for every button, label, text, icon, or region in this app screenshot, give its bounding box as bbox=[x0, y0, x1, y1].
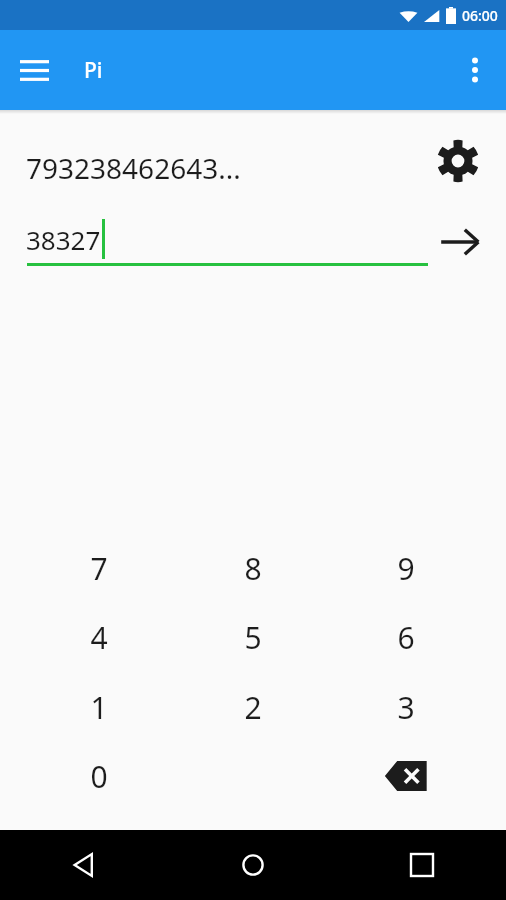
staticText: 1 bbox=[90, 687, 108, 728]
button[interactable]: Back bbox=[0, 830, 168, 900]
staticText: 06:00 bbox=[462, 6, 498, 25]
button[interactable]: 8 bbox=[187, 535, 319, 601]
staticText: 2 bbox=[244, 687, 262, 728]
button[interactable]: 3 bbox=[340, 674, 472, 740]
button[interactable]: 6 bbox=[340, 604, 472, 670]
button[interactable]: Recent apps bbox=[337, 830, 506, 900]
button[interactable]: 9 bbox=[340, 535, 472, 601]
button[interactable]: More options bbox=[451, 46, 499, 94]
button[interactable]: 4 bbox=[33, 604, 165, 670]
staticText: 9 bbox=[397, 548, 415, 589]
button[interactable]: 5 bbox=[187, 604, 319, 670]
staticText: 38327 bbox=[26, 222, 101, 257]
staticText: 5 bbox=[244, 617, 262, 658]
button[interactable]: 0 bbox=[33, 743, 165, 809]
button[interactable]: Home bbox=[168, 830, 337, 900]
button[interactable]: 1 bbox=[33, 674, 165, 740]
staticText: 4 bbox=[90, 617, 108, 658]
staticText: 3 bbox=[397, 687, 415, 728]
button[interactable]: 7 bbox=[33, 535, 165, 601]
staticText: Pi bbox=[84, 56, 103, 85]
staticText: 0 bbox=[90, 756, 108, 797]
staticText: 793238462643... bbox=[26, 149, 241, 187]
button[interactable]: Submit bbox=[432, 214, 488, 270]
button[interactable]: 2 bbox=[187, 674, 319, 740]
staticText: 6 bbox=[397, 617, 415, 658]
staticText: 7 bbox=[90, 548, 108, 589]
button[interactable]: Backspace bbox=[340, 743, 472, 809]
button[interactable]: Settings bbox=[430, 133, 486, 189]
button[interactable]: Open navigation drawer bbox=[10, 46, 58, 94]
staticText: 8 bbox=[244, 548, 262, 589]
